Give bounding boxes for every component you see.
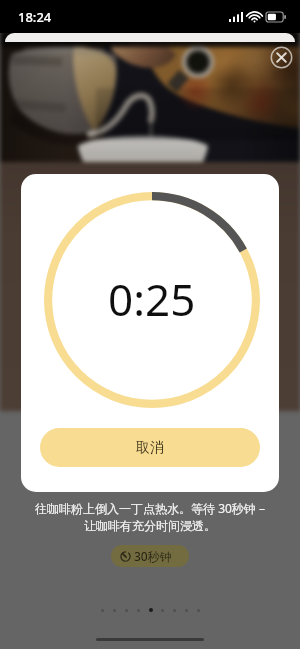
button[interactable]: 30秒钟	[111, 545, 189, 567]
staticText: 往咖啡粉上倒入一丁点热水。等待 30秒钟 – 让咖啡有充分时间浸透。	[12, 500, 288, 533]
button[interactable]: Close	[269, 45, 294, 70]
staticText: 取消	[136, 439, 164, 457]
button[interactable]: 取消	[40, 428, 260, 467]
staticText: 18:24	[18, 8, 52, 26]
staticText: 30秒钟	[134, 548, 172, 564]
staticText: 0:25	[108, 269, 196, 329]
